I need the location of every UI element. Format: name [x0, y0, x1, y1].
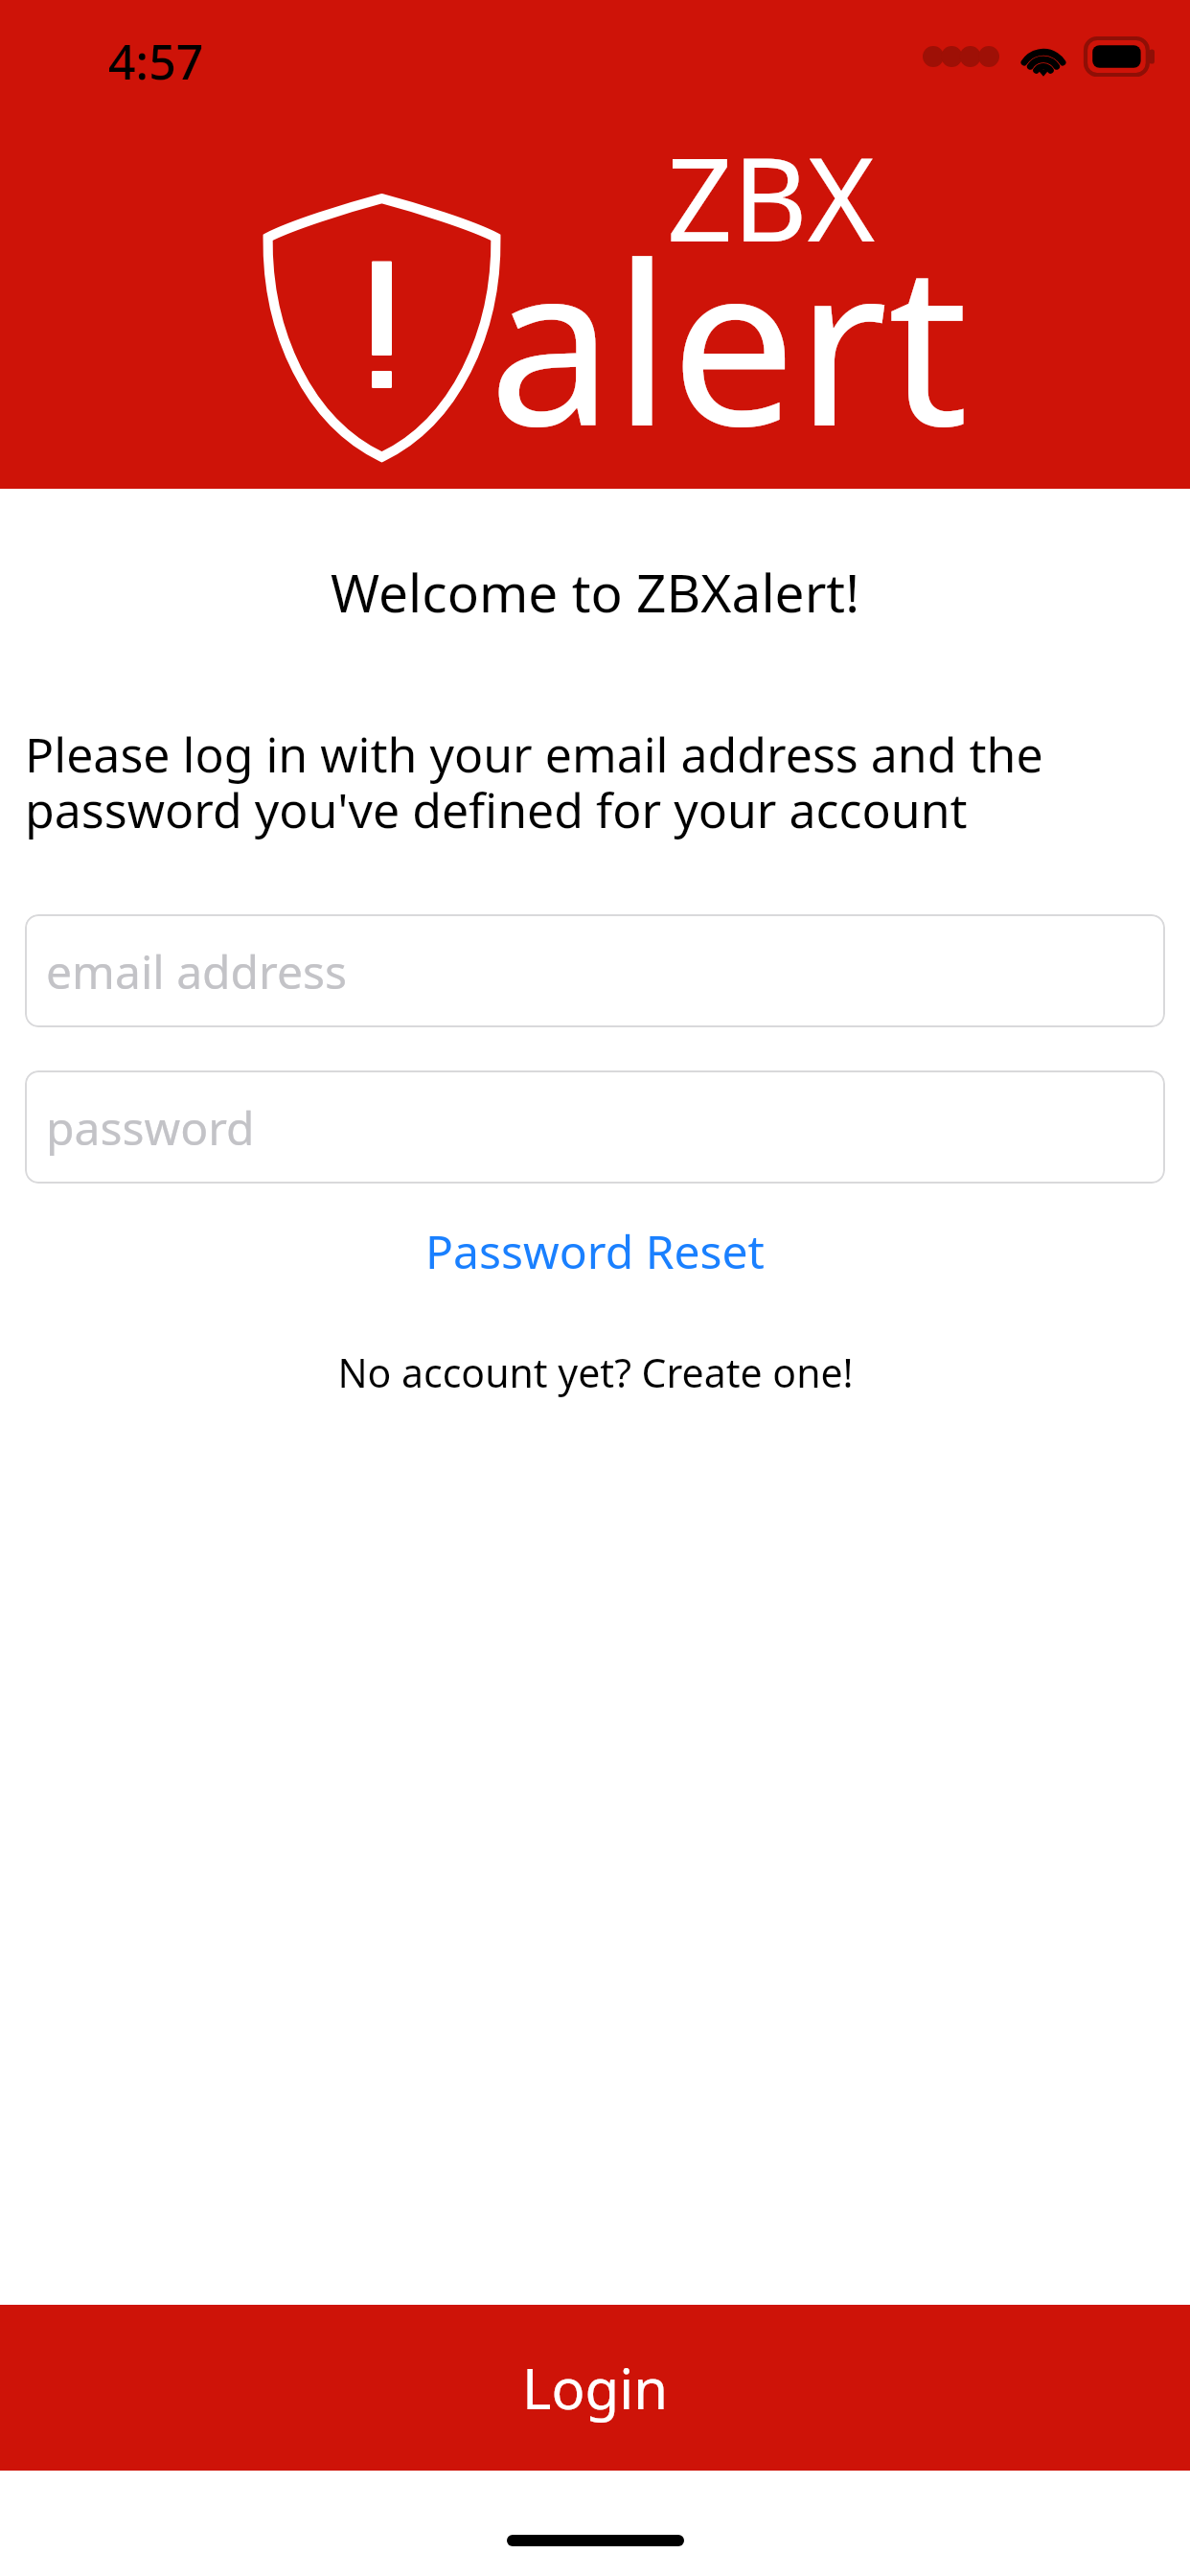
staticText: Welcome to ZBXalert! [0, 556, 1190, 628]
button[interactable]: email address [25, 914, 1165, 1027]
button[interactable]: No account yet? Create one! [0, 1336, 1190, 1409]
staticText: email address [46, 940, 348, 1002]
staticText: No account yet? Create one! [337, 1345, 854, 1399]
staticText: Login [522, 2350, 668, 2426]
staticText: ZBX [667, 119, 875, 275]
staticText: 4:57 [108, 29, 204, 94]
staticText: alert [489, 188, 969, 491]
button[interactable]: password [25, 1070, 1165, 1184]
button[interactable]: Password Reset [0, 1207, 1190, 1296]
button[interactable]: Login [0, 2305, 1190, 2471]
staticText: password [46, 1096, 255, 1159]
staticText: Please log in with your email address an… [25, 722, 1165, 841]
staticText: Password Reset [425, 1220, 765, 1282]
